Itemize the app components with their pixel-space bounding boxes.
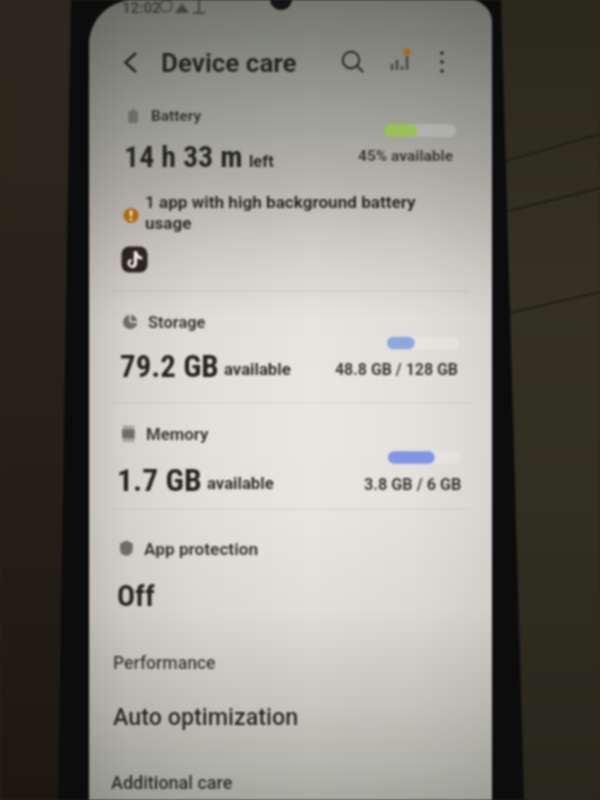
staticText: Off (117, 578, 155, 613)
staticText: Auto optimization (113, 703, 299, 730)
button[interactable]: More options (425, 44, 461, 80)
button[interactable] (100, 518, 470, 618)
button[interactable] (100, 412, 470, 507)
button[interactable]: Diagnostics (383, 44, 419, 80)
staticText: Additional care (111, 772, 233, 793)
staticText: 48.8 GB / 128 GB (335, 360, 458, 379)
staticText: Performance (113, 653, 216, 674)
staticText: 1.7 GB (117, 462, 202, 499)
staticText: Memory (146, 424, 209, 444)
button[interactable] (100, 192, 470, 286)
staticText: 3.8 GB / 6 GB (364, 475, 462, 494)
staticText: left (249, 152, 274, 171)
staticText: Device care (161, 48, 297, 78)
staticText: 14 h 33 m (124, 139, 243, 174)
button[interactable]: Search (335, 44, 371, 80)
staticText: 45% available (358, 147, 453, 165)
staticText: available (224, 360, 291, 380)
staticText: 1 app with high background battery (145, 192, 416, 212)
staticText: Storage (148, 313, 206, 332)
staticText: Battery (151, 107, 202, 125)
staticText: usage (145, 213, 192, 233)
staticText: available (207, 474, 274, 494)
button[interactable] (100, 300, 470, 395)
button[interactable] (100, 760, 470, 800)
button[interactable]: Back (113, 44, 149, 80)
staticText: 79.2 GB (120, 348, 219, 384)
staticText: App protection (144, 539, 259, 559)
button[interactable] (100, 96, 470, 190)
button[interactable] (100, 690, 470, 748)
staticText: 12:02 (122, 0, 161, 17)
